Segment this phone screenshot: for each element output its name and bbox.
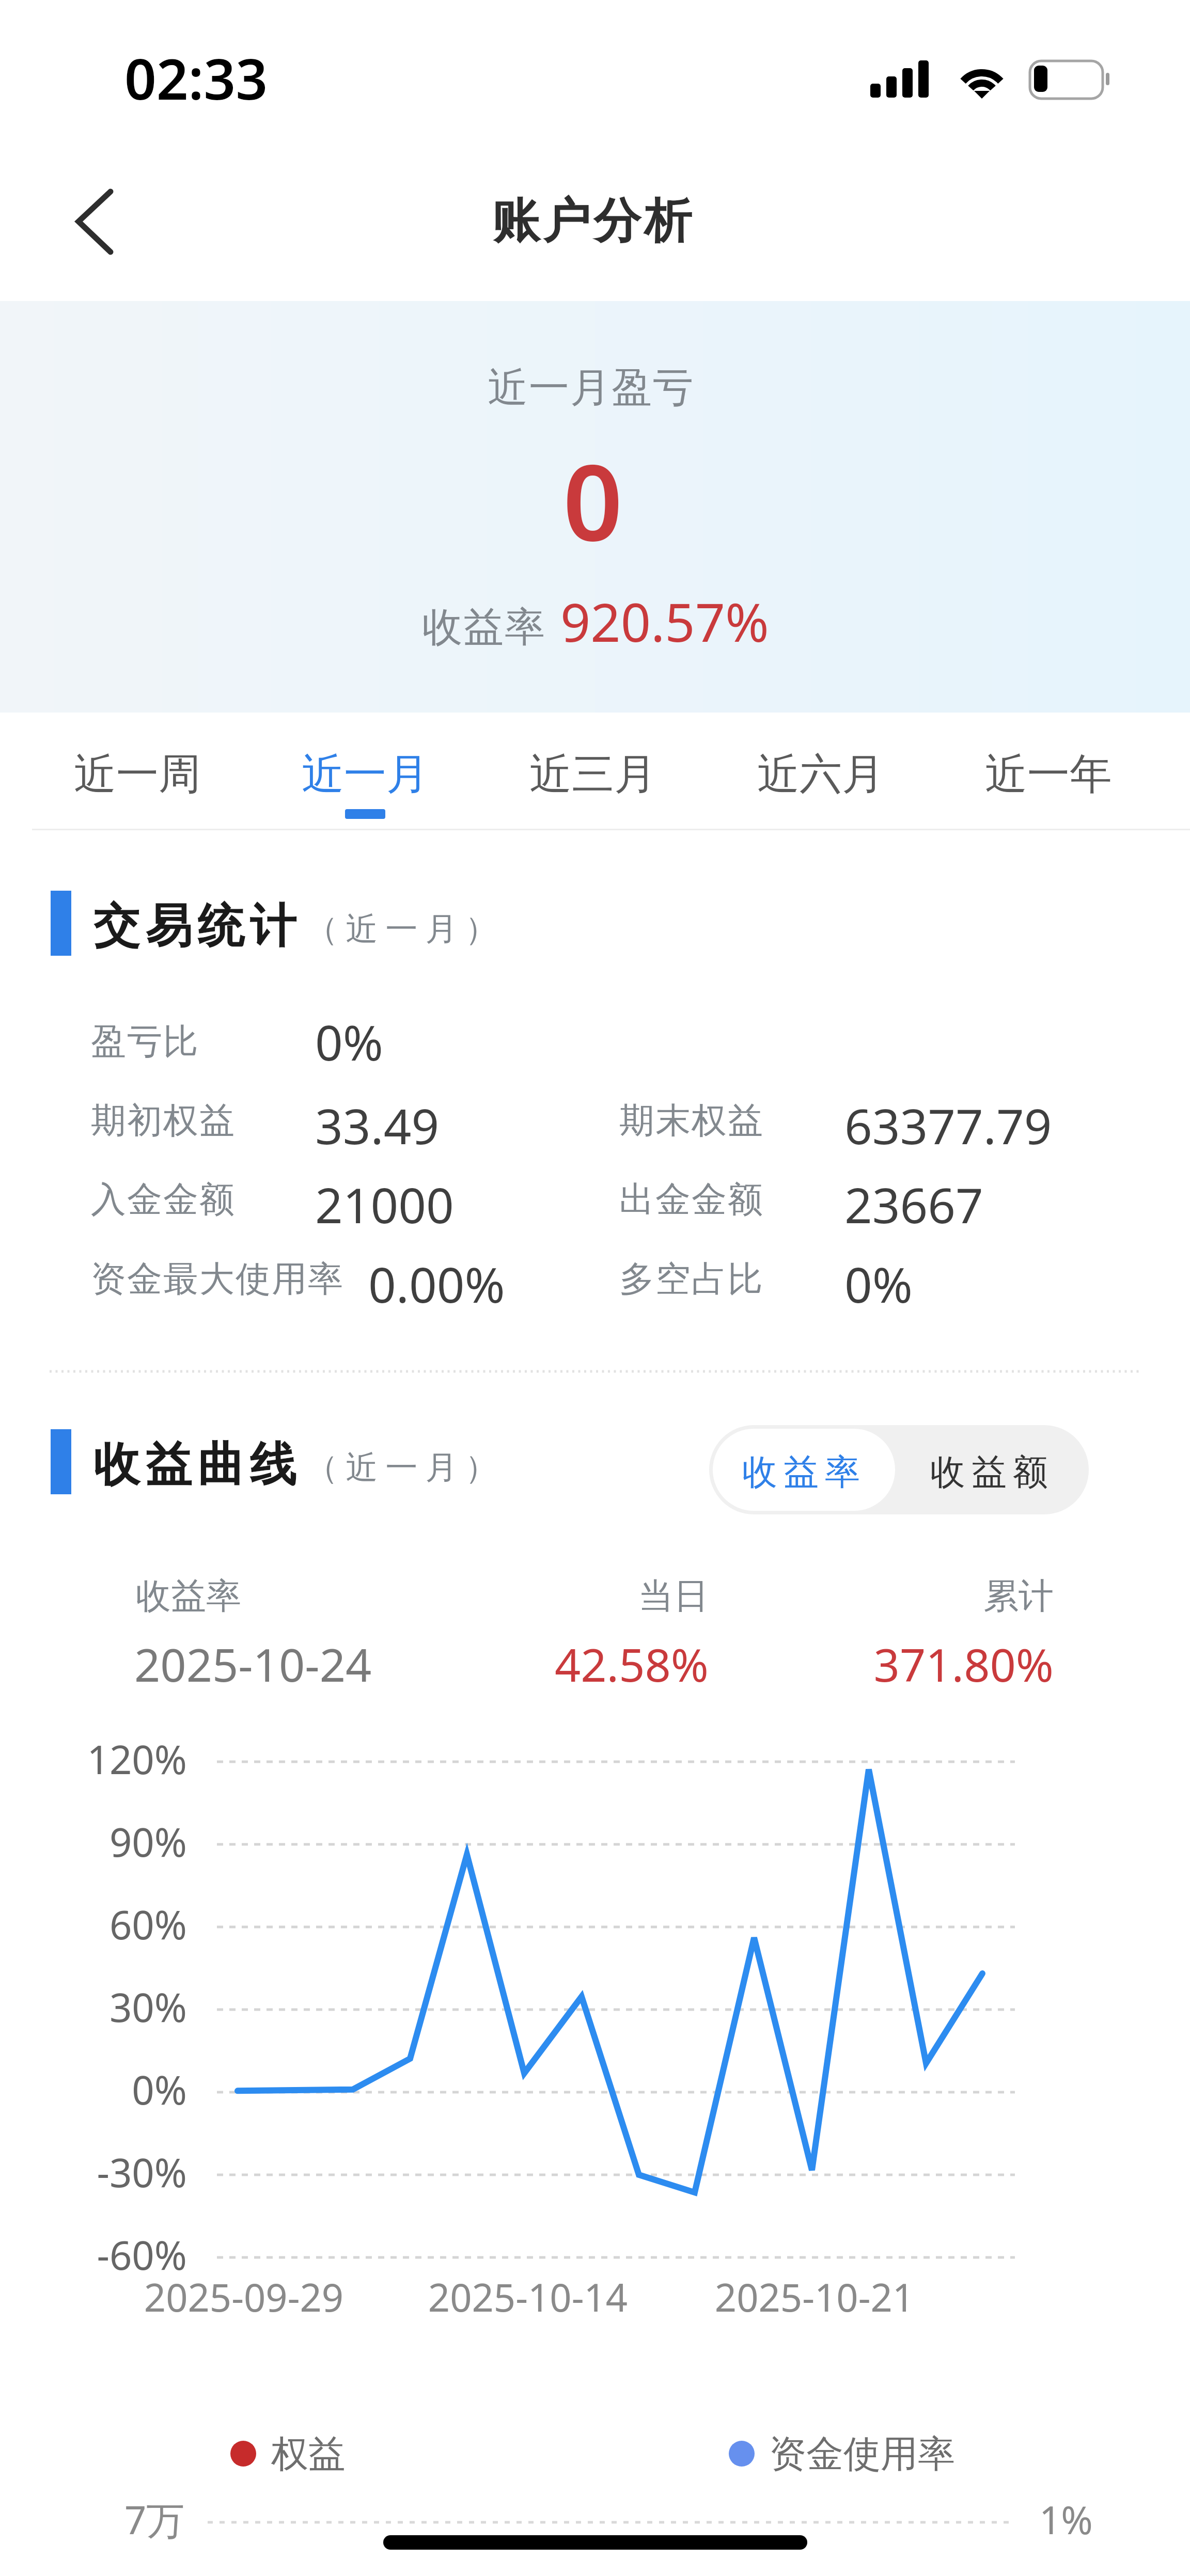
- staticText: 90%: [42, 1815, 187, 1869]
- staticText: 近一月: [302, 748, 429, 801]
- staticText: 资金最大使用率: [90, 1257, 343, 1302]
- staticText: 期末权益: [619, 1099, 763, 1143]
- staticText: 收益率: [739, 1450, 863, 1495]
- staticText: 0%: [315, 1009, 383, 1075]
- staticText: 120%: [42, 1732, 187, 1786]
- button[interactable]: 近一周: [24, 713, 251, 829]
- staticText: 近一年: [985, 748, 1112, 801]
- staticText: 33.49: [315, 1093, 440, 1159]
- button[interactable]: 收益额: [895, 1425, 1089, 1514]
- staticText: 7万: [124, 2493, 185, 2546]
- staticText: 盈亏比: [90, 1020, 199, 1064]
- button[interactable]: 近一年: [934, 713, 1162, 829]
- staticText: 收益率: [421, 602, 545, 653]
- staticText: 2025-10-21: [711, 2271, 918, 2323]
- staticText: 收益率: [136, 1574, 241, 1619]
- staticText: 期初权益: [90, 1099, 235, 1143]
- staticText: 02:33: [124, 40, 268, 116]
- staticText: 371.80%: [847, 1633, 1054, 1695]
- staticText: 交易统计: [90, 897, 299, 955]
- staticText: 920.57%: [560, 586, 769, 657]
- staticText: （近一月）: [302, 1447, 501, 1488]
- staticText: 63377.79: [844, 1093, 1052, 1159]
- button[interactable]: 收益率: [713, 1429, 895, 1511]
- staticText: 近一周: [74, 748, 201, 801]
- staticText: 累计: [847, 1574, 1054, 1619]
- staticText: 权益: [271, 2431, 346, 2478]
- button[interactable]: 近六月: [707, 713, 934, 829]
- staticText: 21000: [315, 1172, 454, 1238]
- staticText: 收益曲线: [90, 1435, 299, 1494]
- staticText: 1%: [1039, 2493, 1093, 2546]
- staticText: 2025-09-29: [140, 2271, 347, 2323]
- staticText: 近三月: [529, 748, 656, 801]
- staticText: 0.00%: [368, 1251, 505, 1317]
- staticText: 近一月盈亏: [487, 362, 694, 413]
- staticText: 收益额: [927, 1450, 1051, 1495]
- staticText: 入金金额: [90, 1178, 235, 1222]
- button[interactable]: 近三月: [479, 713, 707, 829]
- staticText: 42.58%: [502, 1633, 709, 1695]
- staticText: 2025-10-24: [134, 1633, 372, 1695]
- staticText: 资金使用率: [769, 2431, 955, 2478]
- button[interactable]: 近一月: [251, 713, 479, 829]
- button[interactable]: Back: [37, 176, 130, 268]
- staticText: -30%: [42, 2145, 187, 2199]
- staticText: 近六月: [757, 748, 884, 801]
- staticText: 多空占比: [619, 1257, 763, 1302]
- staticText: 出金金额: [619, 1178, 763, 1222]
- staticText: 23667: [844, 1172, 983, 1238]
- staticText: 0: [563, 429, 623, 571]
- staticText: 账户分析: [491, 191, 693, 251]
- staticText: 30%: [42, 1980, 187, 2034]
- staticText: 60%: [42, 1898, 187, 1951]
- staticText: 0%: [42, 2063, 187, 2116]
- staticText: （近一月）: [302, 909, 501, 949]
- staticText: 0%: [844, 1251, 913, 1317]
- staticText: 2025-10-14: [425, 2271, 631, 2323]
- staticText: 当日: [502, 1574, 709, 1619]
- staticText: -60%: [42, 2228, 187, 2282]
